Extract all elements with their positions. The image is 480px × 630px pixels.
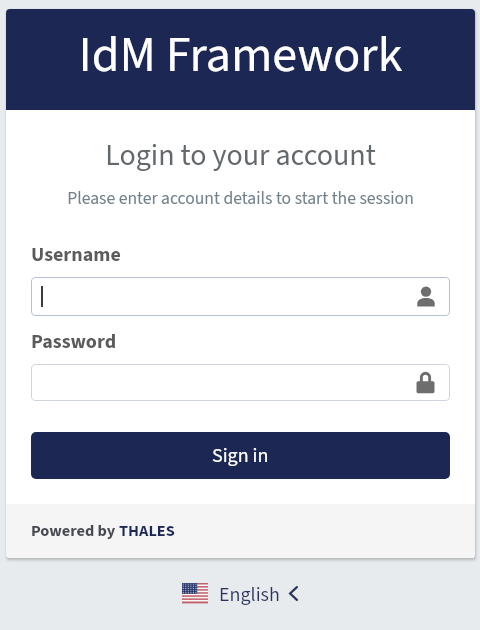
staticText: Login to your account xyxy=(6,134,475,177)
staticText: Sign in xyxy=(212,442,269,470)
button[interactable]: Sign in xyxy=(31,432,450,479)
other: User xyxy=(417,286,435,307)
button[interactable]: Password xyxy=(31,364,450,401)
staticText: Powered by xyxy=(31,519,119,542)
button[interactable]: English xyxy=(182,578,298,606)
staticText: Please enter account details to start th… xyxy=(6,186,475,211)
staticText: THALES xyxy=(119,519,175,542)
button[interactable]: User xyxy=(31,277,450,316)
staticText: IdM Framework xyxy=(6,20,475,91)
staticText: Password xyxy=(31,328,117,356)
staticText: Username xyxy=(31,241,121,269)
staticText: English xyxy=(219,581,280,609)
other: Password xyxy=(416,372,435,393)
